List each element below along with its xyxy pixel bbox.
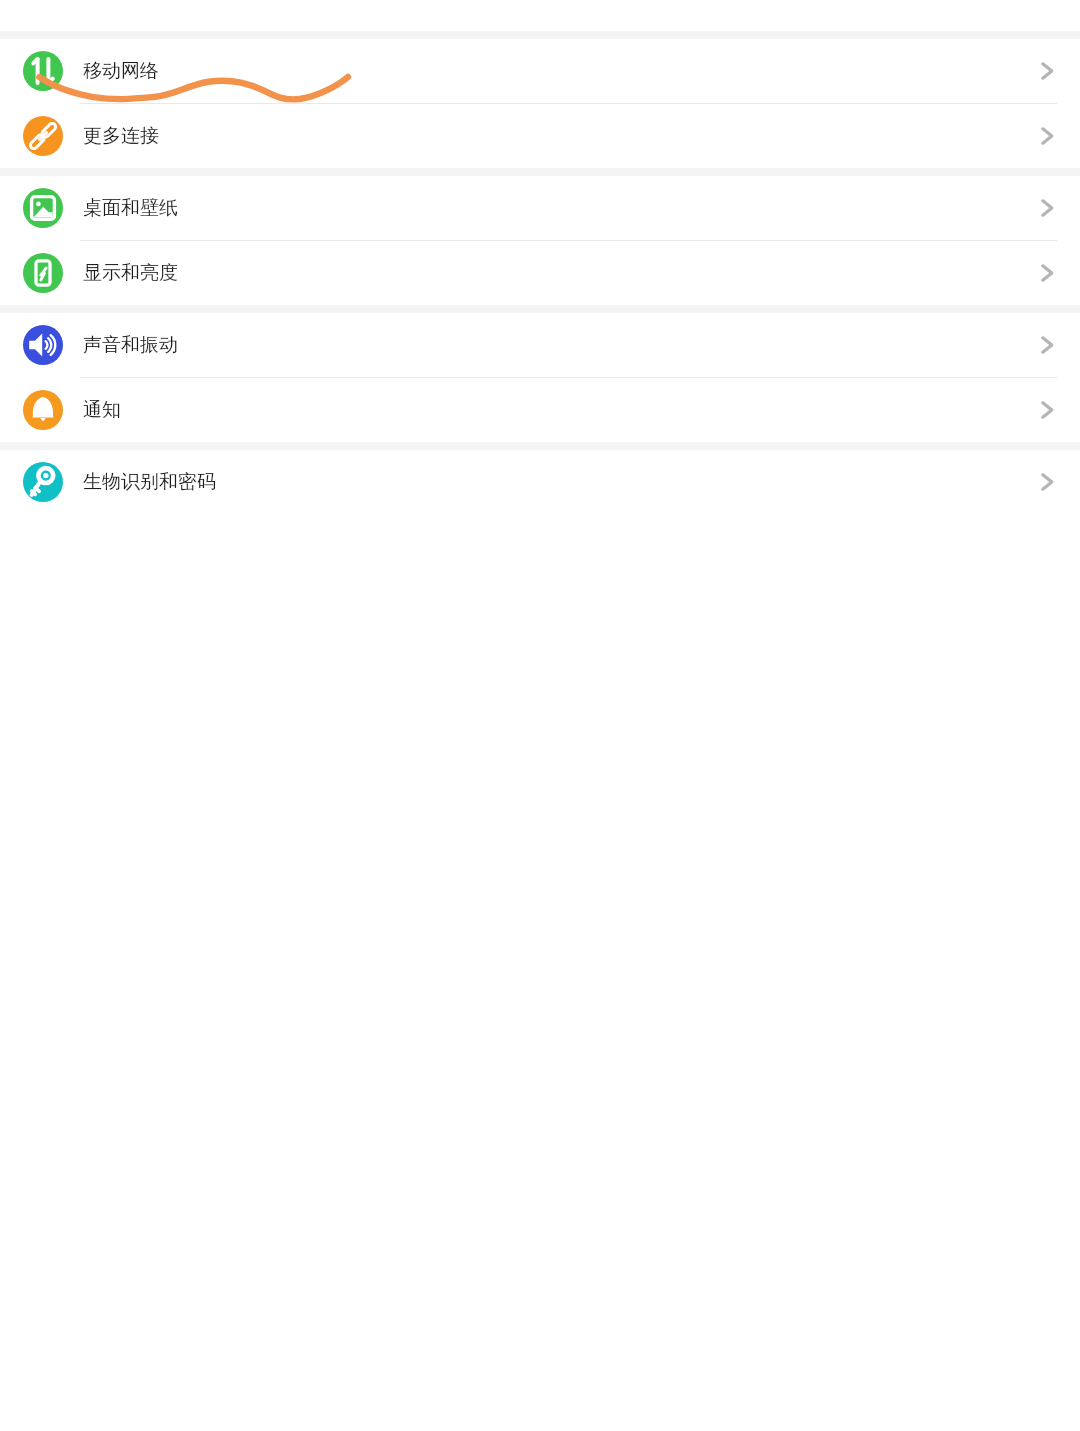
staticText: 桌面和壁纸: [83, 196, 1032, 220]
other: Highlight annotation: [20, 74, 354, 106]
staticText: 生物识别和密码: [83, 470, 1032, 494]
button[interactable]: 桌面和壁纸: [0, 176, 1080, 240]
staticText: 声音和振动: [83, 333, 1032, 357]
staticText: 移动网络: [83, 59, 1032, 83]
button[interactable]: 通知: [0, 378, 1080, 442]
staticText: 通知: [83, 398, 1032, 422]
button[interactable]: 显示和亮度: [0, 241, 1080, 305]
button[interactable]: 声音和振动: [0, 313, 1080, 377]
button[interactable]: 更多连接: [0, 104, 1080, 168]
button[interactable]: 生物识别和密码: [0, 450, 1080, 514]
staticText: 显示和亮度: [83, 261, 1032, 285]
button[interactable]: 移动网络: [0, 39, 1080, 103]
staticText: 更多连接: [83, 124, 1032, 148]
